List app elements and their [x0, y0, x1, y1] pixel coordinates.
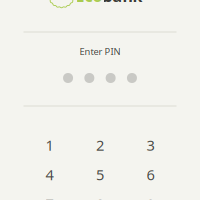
- staticText: 5: [96, 165, 104, 184]
- button[interactable]: 7: [24, 189, 74, 200]
- staticText: 3: [146, 135, 154, 155]
- button[interactable]: 4: [24, 159, 74, 189]
- staticText: 2: [96, 135, 104, 155]
- button[interactable]: 6: [125, 159, 175, 189]
- button[interactable]: Ecobank: [0, 0, 200, 20]
- staticText: bank: [102, 0, 142, 6]
- staticText: 6: [146, 165, 154, 184]
- button[interactable]: 2: [75, 130, 125, 160]
- button[interactable]: 3: [125, 130, 175, 160]
- staticText: 8: [96, 194, 104, 200]
- staticText: Enter PIN: [79, 45, 120, 58]
- button[interactable]: 1: [24, 130, 74, 160]
- staticText: 7: [45, 194, 53, 200]
- staticText: 4: [45, 165, 53, 184]
- button[interactable]: 5: [75, 159, 125, 189]
- staticText: Eco: [75, 0, 102, 6]
- staticText: 1: [45, 135, 53, 155]
- staticText: 9: [146, 194, 154, 200]
